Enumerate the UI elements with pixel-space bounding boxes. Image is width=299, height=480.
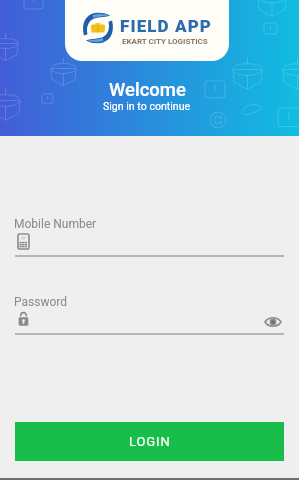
button[interactable]: Show password bbox=[262, 311, 284, 333]
staticText: Sign in to continue bbox=[103, 100, 191, 112]
staticText: FIELD APP bbox=[120, 16, 213, 36]
staticText: EKART CITY LOGISTICS bbox=[122, 37, 208, 46]
button[interactable]: LOGIN bbox=[15, 422, 284, 461]
staticText: Password bbox=[14, 295, 68, 309]
staticText: Welcome bbox=[109, 79, 186, 101]
staticText: Mobile Number bbox=[14, 217, 97, 231]
staticText: LOGIN bbox=[129, 434, 171, 449]
